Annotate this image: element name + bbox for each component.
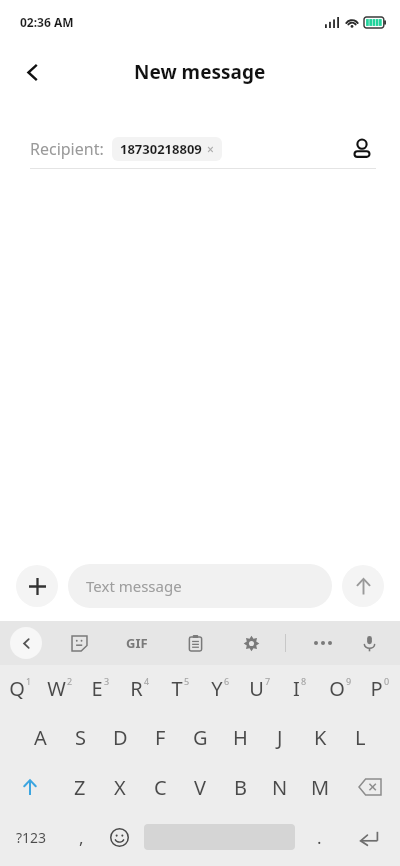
button[interactable]: K (300, 712, 340, 762)
staticText: 4 (144, 675, 150, 687)
staticText: P (370, 675, 383, 702)
staticText: 2 (67, 675, 73, 687)
staticText: R (130, 675, 143, 702)
button[interactable]: Enter (338, 812, 400, 862)
button[interactable]: X (100, 762, 140, 812)
staticText: 8 (301, 675, 307, 687)
button[interactable]: V (180, 762, 220, 812)
button[interactable]: Clipboard (178, 626, 212, 660)
staticText: Recipient: (30, 138, 104, 160)
button[interactable]: More options (306, 626, 340, 660)
button[interactable]: Contacts (342, 130, 382, 168)
staticText: K (314, 724, 327, 751)
button[interactable]: N (260, 762, 300, 812)
button[interactable]: . (300, 812, 338, 862)
staticText: W (47, 675, 66, 702)
staticText: D (113, 724, 128, 751)
staticText: F (155, 724, 166, 751)
staticText: 1 (26, 675, 32, 687)
button[interactable]: Backspace (340, 762, 400, 812)
staticText: C (154, 774, 167, 801)
button[interactable]: F (140, 712, 180, 762)
button[interactable]: M (300, 762, 340, 812)
button[interactable]: C (140, 762, 180, 812)
staticText: New message (134, 59, 266, 85)
button[interactable]: Collapse toolbar (10, 627, 42, 659)
button[interactable]: Settings (234, 626, 268, 660)
staticText: S (75, 724, 86, 751)
button[interactable]: Back (10, 50, 54, 94)
staticText: U (249, 675, 264, 702)
button[interactable]: Shift (0, 762, 60, 812)
staticText: M (311, 774, 330, 801)
staticText: A (34, 724, 47, 751)
staticText: 3 (104, 675, 110, 687)
staticText: 7 (265, 675, 271, 687)
staticText: O (329, 675, 345, 702)
staticText: GIF (126, 634, 148, 652)
staticText: 6 (224, 675, 230, 687)
staticText: . (317, 826, 322, 849)
button[interactable]: D (100, 712, 140, 762)
button[interactable]: Send (342, 565, 384, 607)
staticText: J (277, 724, 283, 751)
button[interactable]: E (80, 665, 120, 712)
staticText: E (91, 675, 103, 702)
button[interactable]: Add attachment (16, 565, 58, 607)
staticText: L (355, 724, 366, 751)
button[interactable]: Voice input (352, 626, 386, 660)
button[interactable]: O (320, 665, 360, 712)
button[interactable]: I (280, 665, 320, 712)
button[interactable]: GIF (118, 624, 156, 662)
staticText: 18730218809 (120, 140, 202, 158)
staticText: , (79, 826, 84, 849)
staticText: I (293, 675, 300, 702)
button[interactable]: Y (200, 665, 240, 712)
staticText: G (193, 724, 208, 751)
button[interactable]: ?123 (0, 812, 62, 862)
button[interactable]: U (240, 665, 280, 712)
staticText: V (194, 774, 206, 801)
staticText: X (114, 774, 126, 801)
button[interactable]: H (220, 712, 260, 762)
staticText: T (171, 675, 183, 702)
button[interactable]: Z (60, 762, 100, 812)
button[interactable]: L (340, 712, 380, 762)
staticText: 0 (384, 675, 390, 687)
staticText: 9 (346, 675, 352, 687)
button[interactable]: Text message (68, 564, 332, 608)
button[interactable]: R (120, 665, 160, 712)
staticText: N (272, 774, 288, 801)
button[interactable]: Emoji (100, 812, 138, 862)
button[interactable]: J (260, 712, 300, 762)
button[interactable]: T (160, 665, 200, 712)
button[interactable]: Stickers (62, 626, 96, 660)
staticText: H (233, 724, 248, 751)
staticText: Q (9, 675, 25, 702)
staticText: 02:36 AM (20, 14, 74, 30)
staticText: × (207, 141, 214, 157)
button[interactable]: 18730218809 (112, 137, 222, 161)
staticText: Y (211, 675, 223, 702)
button[interactable]: S (60, 712, 100, 762)
staticText: Z (74, 774, 86, 801)
staticText: ?123 (16, 828, 47, 847)
button[interactable]: P (360, 665, 400, 712)
button[interactable]: A (20, 712, 60, 762)
button[interactable]: G (180, 712, 220, 762)
button[interactable]: Q (0, 665, 40, 712)
staticText: Text message (86, 576, 182, 596)
button[interactable]: W (40, 665, 80, 712)
button[interactable]: B (220, 762, 260, 812)
staticText: 5 (184, 675, 190, 687)
staticText: B (234, 774, 247, 801)
button[interactable]: Space (138, 812, 300, 862)
button[interactable]: , (62, 812, 100, 862)
